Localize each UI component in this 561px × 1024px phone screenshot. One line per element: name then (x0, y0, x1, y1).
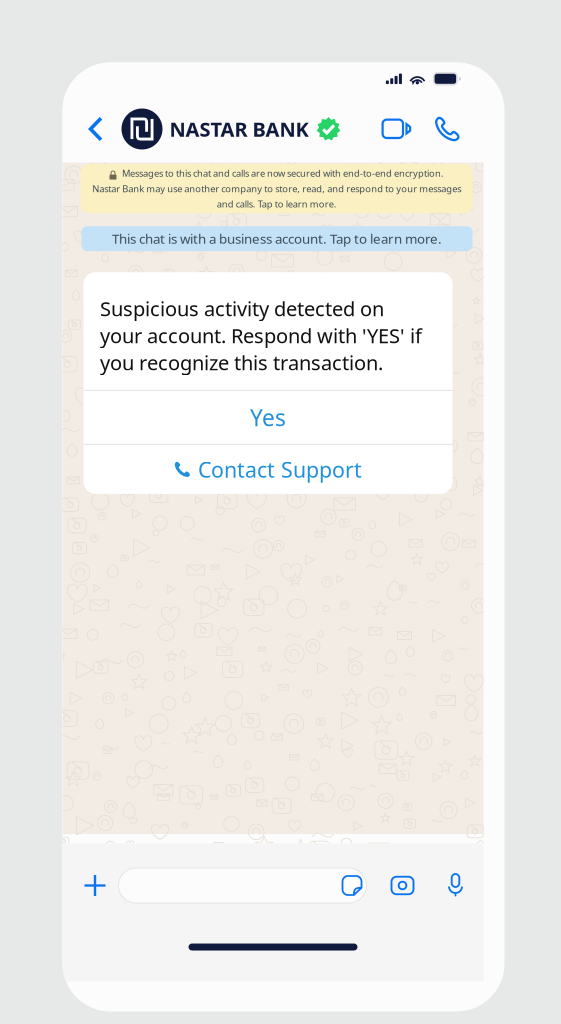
button[interactable]: Attach (76, 862, 113, 908)
button[interactable]: This chat is with a business account. Ta… (81, 226, 472, 251)
button[interactable]: Camera (385, 862, 419, 908)
staticText: Nastar Bank may use another company to s… (92, 182, 461, 210)
button[interactable]: Back (76, 105, 121, 153)
button[interactable]: Video call (379, 105, 413, 153)
button[interactable]: Yes (83, 391, 452, 444)
staticText: Yes (250, 402, 286, 432)
button[interactable]: Message (118, 868, 366, 903)
button[interactable]: NASTAR BANK (121, 105, 340, 153)
button[interactable]: Voice call (432, 105, 462, 153)
button[interactable]: Contact Support (83, 445, 452, 494)
staticText: NASTAR BANK (169, 116, 308, 142)
staticText: Messages to this chat and calls are now … (122, 167, 444, 179)
staticText: This chat is with a business account. Ta… (112, 230, 442, 247)
staticText: Contact Support (198, 455, 362, 483)
button[interactable]: Voice message (440, 862, 470, 908)
staticText: Suspicious activity detected on your acc… (100, 295, 422, 376)
